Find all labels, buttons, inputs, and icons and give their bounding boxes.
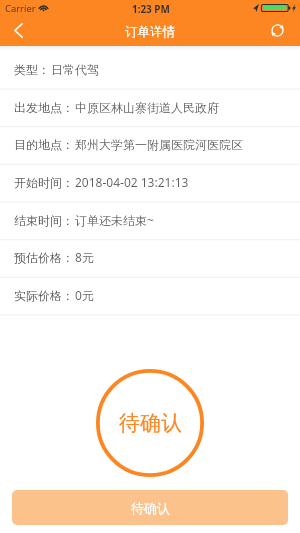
staticText: 结束时间： — [14, 213, 74, 228]
staticText: 8元 — [75, 249, 94, 265]
staticText: 0元 — [75, 287, 94, 303]
staticText: 出发地点： — [14, 100, 74, 115]
staticText: 类型： — [14, 62, 50, 77]
staticText: 中原区林山寨街道人民政府 — [75, 100, 219, 115]
button[interactable]: 目的地点： — [0, 127, 300, 165]
staticText: 订单还未结束~ — [75, 212, 154, 228]
button[interactable]: 出发地点： — [0, 90, 300, 128]
button[interactable]: Back — [0, 20, 38, 46]
staticText: 郑州大学第一附属医院河医院区 — [75, 137, 243, 152]
button[interactable]: 结束时间： — [0, 203, 300, 241]
button[interactable]: Refresh — [260, 20, 300, 46]
button[interactable]: 实际价格： — [0, 278, 300, 316]
staticText: 待确认 — [119, 410, 182, 436]
staticText: 1:23 PM — [132, 2, 170, 15]
button[interactable]: 待确认 状态 — [96, 369, 204, 477]
button[interactable]: 待确认 — [12, 490, 288, 525]
staticText: 订单详情 — [125, 24, 175, 40]
staticText: 目的地点： — [14, 137, 74, 152]
staticText: 实际价格： — [14, 288, 74, 303]
button[interactable]: 开始时间： — [0, 165, 300, 203]
staticText: 预估价格： — [14, 250, 74, 265]
staticText: 待确认 — [131, 500, 170, 516]
staticText: 开始时间： — [14, 175, 74, 190]
staticText: Carrier — [5, 2, 36, 15]
staticText: 日常代驾 — [51, 62, 99, 77]
button[interactable]: 类型： — [0, 52, 300, 90]
button[interactable]: 预估价格： — [0, 240, 300, 278]
staticText: 2018-04-02 13:21:13 — [75, 174, 189, 190]
